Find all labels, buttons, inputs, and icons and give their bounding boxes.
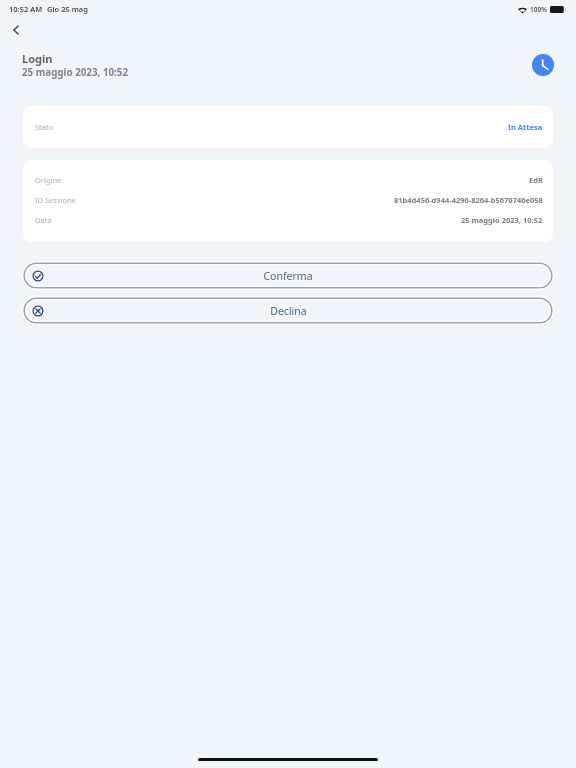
staticText: Data	[35, 215, 52, 225]
staticText: 100%	[530, 5, 547, 14]
staticText: 25 maggio 2023, 10:52	[22, 66, 129, 79]
staticText: 10:52 AM	[9, 4, 43, 14]
staticText: In Attesa	[508, 122, 543, 132]
staticText: Login	[22, 51, 53, 66]
staticText: Stato	[35, 122, 54, 132]
staticText: 81b4d456-d944-4290-8264-b5670746e058	[394, 195, 543, 205]
staticText: 25 maggio 2023, 10:52	[461, 215, 543, 225]
button[interactable]: Back	[5, 19, 26, 40]
button[interactable]: Conferma	[22, 261, 554, 290]
button[interactable]: Declina	[22, 296, 554, 325]
staticText: Gio 25 mag	[47, 4, 88, 14]
staticText: ID Sessione	[35, 195, 76, 205]
staticText: EdR	[529, 175, 543, 185]
staticText: Origine	[35, 175, 62, 185]
staticText: Declina	[270, 304, 307, 318]
staticText: Conferma	[263, 269, 313, 283]
button[interactable]: In attesa	[532, 54, 554, 76]
